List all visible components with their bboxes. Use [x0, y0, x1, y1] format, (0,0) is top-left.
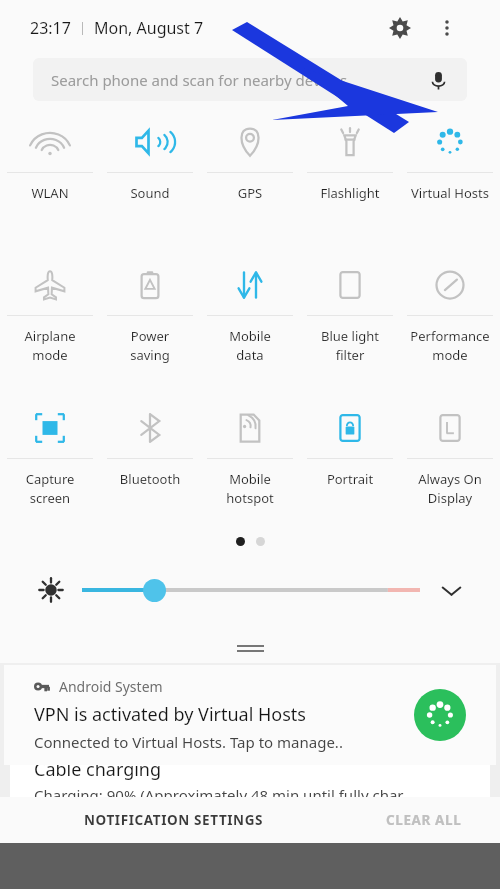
staticText: Airplane mode [1, 327, 99, 364]
other: Brightness [34, 573, 68, 607]
button[interactable]: Airplane mode [0, 253, 100, 396]
staticText: Power saving [101, 327, 199, 364]
button[interactable]: CLEAR ALL [348, 797, 500, 843]
button[interactable]: Blue light filter [300, 253, 400, 396]
button[interactable]: GPS [200, 110, 300, 253]
staticText: Sound [101, 184, 199, 202]
staticText: Charging: 90% (Approximately 48 min unti… [34, 785, 404, 805]
staticText: WLAN [1, 184, 99, 202]
staticText: Blue light filter [301, 327, 399, 364]
button[interactable]: Expand brightness settings [434, 573, 468, 607]
staticText: Cable charging [34, 757, 162, 782]
button[interactable]: Mobile data [200, 253, 300, 396]
staticText: VPN is activated by Virtual Hosts [34, 702, 306, 727]
staticText: Portrait [301, 470, 399, 488]
button[interactable]: Voice search [425, 67, 451, 93]
button[interactable]: NOTIFICATION SETTINGS [0, 797, 348, 843]
staticText: Mobile hotspot [201, 470, 299, 507]
button[interactable]: More options [426, 7, 468, 49]
button[interactable]: Performance mode [400, 253, 500, 396]
button[interactable]: Flashlight [300, 110, 400, 253]
staticText: Android System [59, 677, 163, 696]
button[interactable]: Cable charging [10, 757, 490, 809]
button[interactable]: Virtual Hosts [400, 110, 500, 253]
button[interactable]: Brightness slider [143, 579, 166, 602]
button[interactable]: Always On Display [400, 396, 500, 539]
staticText: NOTIFICATION SETTINGS [84, 811, 264, 829]
staticText: CLEAR ALL [386, 811, 462, 829]
button[interactable]: Mobile hotspot [200, 396, 300, 539]
staticText: 23:17 [30, 17, 71, 39]
button[interactable]: Capture screen [0, 396, 100, 539]
staticText: Virtual Hosts [401, 184, 499, 202]
button[interactable]: WLAN [0, 110, 100, 253]
staticText: Performance mode [401, 327, 499, 364]
staticText: Mon, August 7 [94, 17, 204, 39]
button[interactable]: Portrait [300, 396, 400, 539]
button[interactable]: Power saving [100, 253, 200, 396]
button[interactable]: Search phone and scan for nearby devices [33, 58, 467, 101]
staticText: Bluetooth [101, 470, 199, 488]
staticText: Flashlight [301, 184, 399, 202]
button[interactable]: Bluetooth [100, 396, 200, 539]
button[interactable]: Sound [100, 110, 200, 253]
button[interactable]: Settings [379, 7, 421, 49]
staticText: Always On Display [401, 470, 499, 507]
staticText: Connected to Virtual Hosts. Tap to manag… [34, 732, 343, 752]
staticText: GPS [201, 184, 299, 202]
staticText: Capture screen [1, 470, 99, 507]
staticText: Mobile data [201, 327, 299, 364]
staticText: Search phone and scan for nearby devices [51, 70, 348, 90]
button[interactable]: Android System [4, 665, 496, 765]
